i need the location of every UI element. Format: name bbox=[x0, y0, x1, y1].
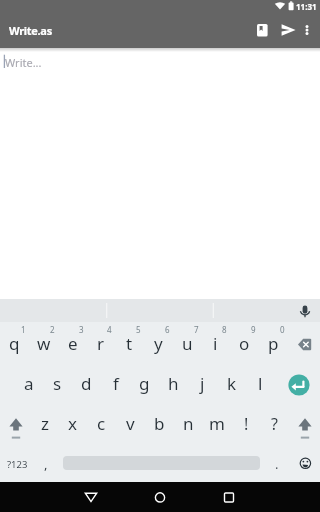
staticText: q bbox=[9, 332, 20, 355]
button[interactable]: p bbox=[259, 323, 288, 363]
staticText: b bbox=[154, 412, 165, 435]
staticText: t bbox=[126, 332, 133, 355]
staticText: g bbox=[139, 372, 150, 395]
button[interactable] bbox=[214, 299, 320, 322]
button[interactable]: w bbox=[29, 323, 58, 363]
staticText: Write... bbox=[5, 55, 42, 70]
button[interactable]: , bbox=[34, 444, 58, 484]
staticText: i bbox=[213, 332, 218, 355]
button[interactable] bbox=[213, 482, 245, 512]
button[interactable]: d bbox=[72, 363, 101, 403]
staticText: 8 bbox=[222, 324, 227, 335]
staticText: ?123 bbox=[7, 458, 28, 471]
staticText: a bbox=[24, 372, 34, 395]
button[interactable]: e bbox=[58, 323, 87, 363]
staticText: p bbox=[268, 332, 279, 355]
staticText: 0 bbox=[280, 324, 285, 335]
button[interactable]: t bbox=[115, 323, 144, 363]
button[interactable]: k bbox=[217, 363, 246, 403]
staticText: v bbox=[126, 412, 135, 435]
staticText: m bbox=[209, 412, 225, 435]
button[interactable]: x bbox=[58, 403, 87, 443]
button[interactable]: ?123 bbox=[0, 444, 34, 484]
button[interactable]: a bbox=[14, 363, 43, 403]
staticText: Write.as bbox=[9, 23, 52, 38]
button[interactable] bbox=[291, 448, 319, 478]
staticText: 3 bbox=[79, 324, 84, 335]
button[interactable]: ? bbox=[260, 404, 289, 444]
staticText: k bbox=[227, 372, 237, 395]
staticText: 7 bbox=[194, 324, 199, 335]
staticText: 9 bbox=[251, 324, 256, 335]
button[interactable]: b bbox=[145, 403, 174, 443]
staticText: , bbox=[44, 455, 48, 473]
button[interactable] bbox=[144, 482, 176, 512]
staticText: . bbox=[275, 455, 279, 473]
staticText: 1 bbox=[21, 324, 26, 335]
button[interactable]: ! bbox=[232, 404, 261, 444]
button[interactable] bbox=[291, 404, 319, 440]
button[interactable] bbox=[276, 18, 300, 42]
button[interactable] bbox=[284, 369, 316, 401]
staticText: w bbox=[37, 332, 51, 355]
staticText: o bbox=[239, 332, 250, 355]
staticText: l bbox=[258, 372, 263, 395]
button[interactable] bbox=[2, 404, 30, 440]
staticText: 11:31 bbox=[296, 1, 317, 12]
staticText: h bbox=[168, 372, 179, 395]
staticText: c bbox=[97, 412, 106, 435]
staticText: 5 bbox=[136, 324, 141, 335]
staticText: r bbox=[97, 332, 105, 355]
button[interactable]: g bbox=[130, 363, 159, 403]
staticText: 2 bbox=[50, 324, 55, 335]
staticText: y bbox=[154, 332, 163, 355]
button[interactable]: . bbox=[265, 444, 289, 484]
button[interactable]: h bbox=[159, 363, 188, 403]
button[interactable]: u bbox=[173, 323, 202, 363]
button[interactable]: z bbox=[30, 403, 59, 443]
button[interactable]: q bbox=[0, 323, 29, 363]
staticText: ! bbox=[244, 413, 249, 435]
staticText: f bbox=[113, 372, 119, 395]
button[interactable]: j bbox=[188, 363, 217, 403]
button[interactable] bbox=[250, 18, 274, 42]
button[interactable]: m bbox=[202, 403, 231, 443]
button[interactable] bbox=[298, 18, 318, 42]
button[interactable]: r bbox=[86, 323, 115, 363]
staticText: 6 bbox=[165, 324, 170, 335]
button[interactable]: f bbox=[101, 363, 130, 403]
button[interactable]: c bbox=[87, 403, 116, 443]
staticText: x bbox=[68, 412, 77, 435]
staticText: z bbox=[41, 412, 49, 435]
button[interactable]: s bbox=[43, 363, 72, 403]
staticText: u bbox=[182, 332, 193, 355]
button[interactable]: l bbox=[246, 363, 275, 403]
button[interactable]: i bbox=[201, 323, 230, 363]
staticText: d bbox=[81, 372, 92, 395]
staticText: e bbox=[68, 332, 78, 355]
button[interactable]: o bbox=[230, 323, 259, 363]
button[interactable] bbox=[290, 324, 320, 364]
staticText: 4 bbox=[107, 324, 112, 335]
staticText: n bbox=[183, 412, 194, 435]
button[interactable]: v bbox=[116, 403, 145, 443]
button[interactable] bbox=[75, 482, 107, 512]
staticText: s bbox=[53, 372, 62, 395]
button[interactable]: n bbox=[174, 403, 203, 443]
staticText: ? bbox=[271, 413, 278, 435]
staticText: j bbox=[200, 372, 205, 395]
button[interactable]: y bbox=[144, 323, 173, 363]
